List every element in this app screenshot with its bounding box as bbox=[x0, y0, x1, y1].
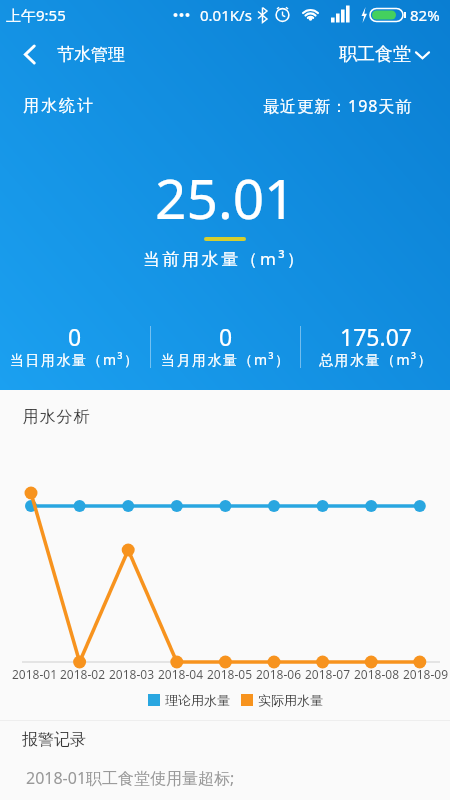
staticText: 2018-01 bbox=[12, 666, 58, 682]
button[interactable] bbox=[16, 40, 44, 68]
staticText: 节水管理 bbox=[57, 44, 125, 65]
staticText: 职工食堂 bbox=[339, 43, 411, 66]
staticText: 用水统计 bbox=[22, 96, 94, 116]
staticText: 最近更新：198天前 bbox=[263, 95, 413, 117]
staticText: 0.01K/s bbox=[200, 5, 252, 25]
staticText: 2018-08 bbox=[354, 666, 400, 682]
staticText: 2018-03 bbox=[109, 666, 155, 682]
staticText: 2018-04 bbox=[158, 666, 204, 682]
staticText: 当月用水量（m³） bbox=[161, 350, 291, 369]
staticText: 用水分析 bbox=[22, 407, 90, 427]
staticText: 当前用水量（m³） bbox=[143, 247, 307, 270]
staticText: 2018-07 bbox=[305, 666, 351, 682]
staticText: 25.01 bbox=[155, 160, 296, 235]
staticText: 报警记录 bbox=[22, 730, 86, 750]
staticText: 175.07 bbox=[340, 321, 412, 352]
button[interactable]: 职工食堂 bbox=[339, 43, 430, 66]
staticText: 理论用水量 bbox=[165, 692, 230, 708]
staticText: 82% bbox=[410, 5, 440, 25]
staticText: 2018-02 bbox=[60, 666, 106, 682]
staticText: 2018-06 bbox=[256, 666, 302, 682]
staticText: 当日用水量（m³） bbox=[10, 350, 140, 369]
staticText: 0 bbox=[219, 321, 233, 352]
staticText: 2018-01职工食堂使用量超标; bbox=[26, 767, 235, 789]
staticText: 上午9:55 bbox=[6, 5, 66, 25]
staticText: 总用水量（m³） bbox=[319, 350, 433, 369]
staticText: 0 bbox=[68, 321, 82, 352]
staticText: 实际用水量 bbox=[258, 692, 323, 708]
staticText: 2018-09 bbox=[403, 666, 449, 682]
staticText: 2018-05 bbox=[207, 666, 253, 682]
